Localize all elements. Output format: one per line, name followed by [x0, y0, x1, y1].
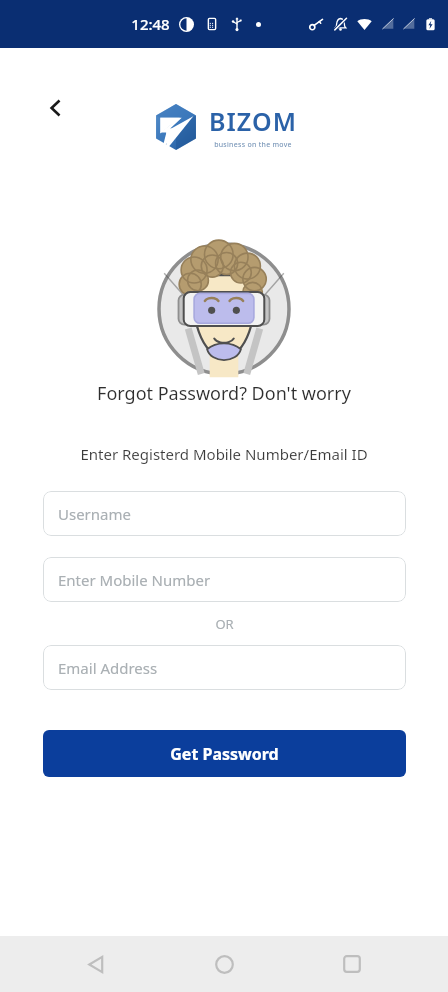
- staticText: BIZOM: [209, 104, 297, 138]
- staticText: business on the move: [214, 140, 292, 150]
- button[interactable]: Username: [43, 491, 406, 536]
- button[interactable]: Get Password: [43, 730, 406, 777]
- staticText: Enter Mobile Number: [58, 570, 211, 590]
- staticText: Username: [58, 504, 131, 524]
- staticText: Forgot Password? Don't worry: [97, 381, 351, 406]
- button[interactable]: Back: [34, 86, 78, 130]
- staticText: Email Address: [58, 658, 158, 678]
- staticText: OR: [215, 615, 234, 633]
- button[interactable]: Home: [192, 936, 256, 992]
- button[interactable]: Enter Mobile Number: [43, 557, 406, 602]
- staticText: 12:48: [131, 14, 170, 34]
- staticText: Enter Registerd Mobile Number/Email ID: [80, 444, 368, 464]
- button[interactable]: Email Address: [43, 645, 406, 690]
- staticText: Get Password: [170, 743, 279, 765]
- button[interactable]: Back: [64, 936, 128, 992]
- button[interactable]: Recent apps: [320, 936, 384, 992]
